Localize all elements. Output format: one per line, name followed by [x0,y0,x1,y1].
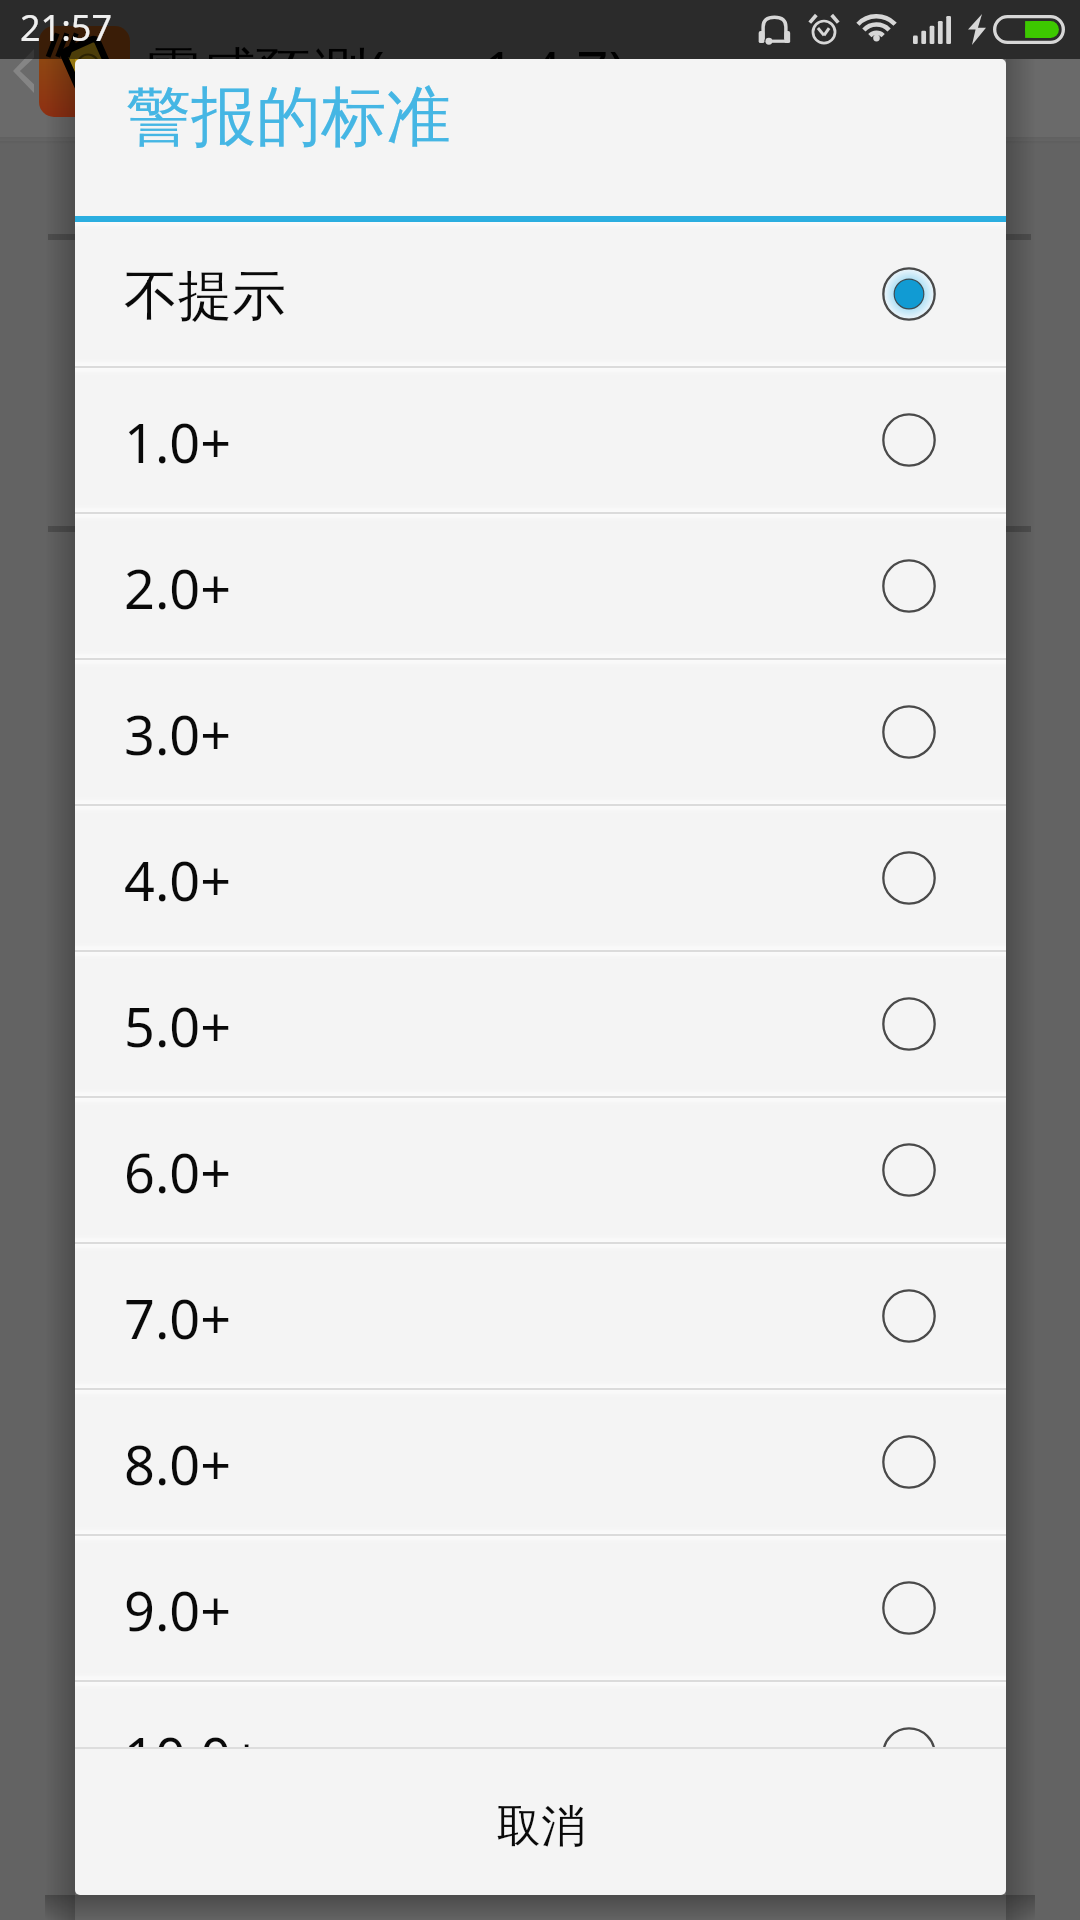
staticText: 10.0+ [124,1719,263,1747]
button[interactable]: 2.0+ [75,514,1006,658]
button[interactable]: 1.0+ [75,368,1006,512]
button[interactable]: 不提示 [75,222,1006,366]
button[interactable]: 4.0+ [75,806,1006,950]
staticText: 1.0+ [124,405,232,479]
staticText: 4.0+ [124,843,232,917]
button[interactable]: 取消 [75,1749,1006,1895]
button[interactable]: 6.0+ [75,1098,1006,1242]
staticText: 不提示 [124,262,286,330]
button[interactable]: Back [0,40,62,102]
staticText: 3.0+ [124,697,232,771]
button[interactable]: 8.0+ [75,1390,1006,1534]
staticText: 8.0+ [124,1427,232,1501]
button[interactable]: 10.0+ [75,1682,1006,1747]
button[interactable]: 3.0+ [75,660,1006,804]
staticText: 取消 [497,1799,585,1854]
button[interactable]: 9.0+ [75,1536,1006,1680]
staticText: 震感预测(ver 1.4.7) [144,33,626,109]
button[interactable]: 5.0+ [75,952,1006,1096]
staticText: 2.0+ [124,551,232,625]
staticText: 5.0+ [124,989,232,1063]
staticText: 6.0+ [124,1135,232,1209]
staticText: 警报的标准 [126,76,451,158]
staticText: 7.0+ [124,1281,232,1355]
staticText: 21:57 [20,3,113,52]
staticText: 9.0+ [124,1573,232,1647]
button[interactable]: 7.0+ [75,1244,1006,1388]
